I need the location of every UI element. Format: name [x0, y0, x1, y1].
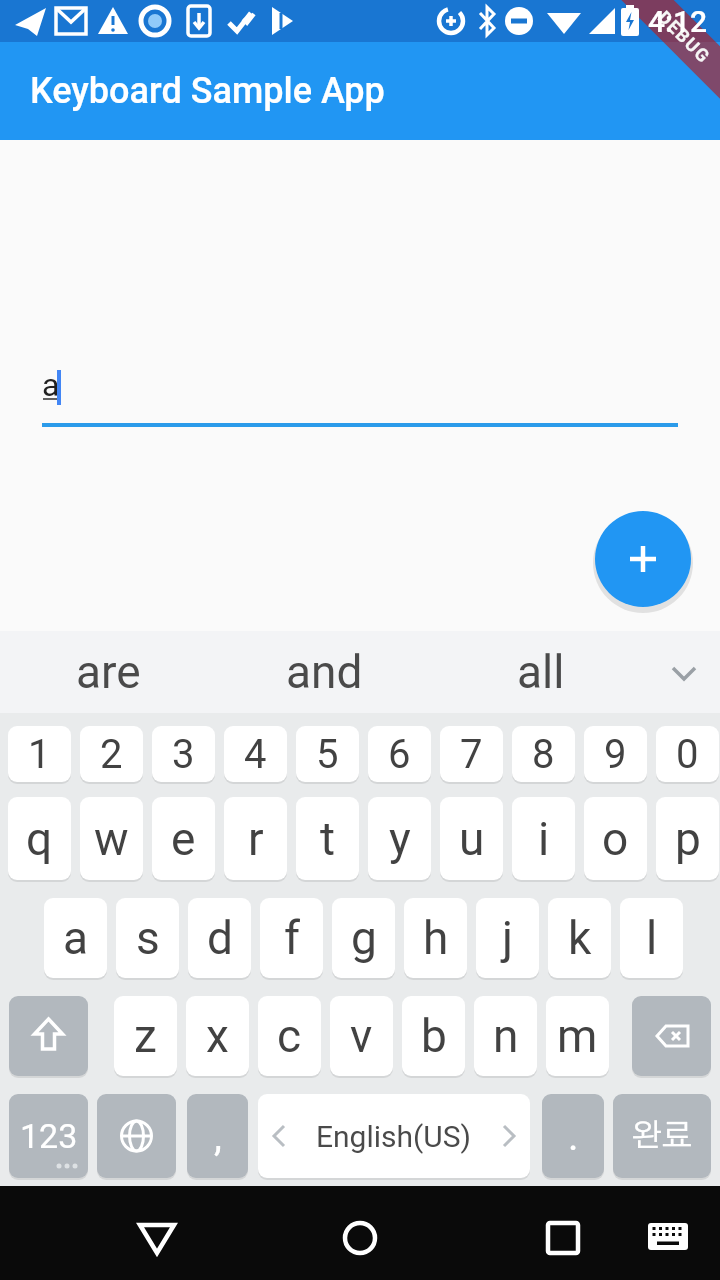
button[interactable]: , — [187, 1094, 248, 1178]
button[interactable]: z — [114, 996, 177, 1076]
button[interactable]: t — [296, 797, 359, 880]
staticText: y — [389, 812, 411, 866]
staticText: 완료 — [631, 1120, 693, 1152]
button[interactable]: 7 — [440, 726, 503, 782]
staticText: j — [502, 911, 514, 965]
button[interactable]: s — [116, 898, 179, 978]
staticText: g — [351, 911, 377, 965]
button[interactable]: 6 — [368, 726, 431, 782]
staticText: x — [206, 1009, 229, 1063]
staticText: 9 — [604, 731, 627, 778]
button[interactable]: 4 — [224, 726, 287, 782]
staticText: o — [602, 812, 629, 866]
staticText: l — [646, 911, 658, 965]
staticText: q — [26, 812, 53, 866]
staticText: 6 — [388, 731, 411, 778]
button[interactable] — [97, 1094, 176, 1178]
button[interactable]: o — [584, 797, 647, 880]
button[interactable]: 3 — [152, 726, 215, 782]
staticText: n — [493, 1009, 519, 1063]
staticText: 2 — [100, 731, 123, 778]
staticText: s — [136, 911, 160, 965]
button[interactable]: h — [404, 898, 467, 978]
button[interactable]: i — [512, 797, 575, 880]
button[interactable] — [660, 648, 708, 696]
button[interactable] — [127, 1207, 187, 1267]
button[interactable] — [644, 1212, 692, 1260]
staticText: Keyboard Sample App — [30, 70, 385, 112]
staticText: and — [286, 645, 363, 699]
button[interactable]: g — [332, 898, 395, 978]
staticText: c — [277, 1009, 302, 1063]
staticText: a — [42, 366, 60, 404]
button[interactable]: w — [80, 797, 143, 880]
button[interactable] — [330, 1207, 390, 1267]
staticText: z — [134, 1009, 157, 1063]
staticText: i — [538, 812, 550, 866]
button[interactable]: m — [546, 996, 609, 1076]
button[interactable]: c — [258, 996, 321, 1076]
button[interactable]: 1 — [8, 726, 71, 782]
staticText: f — [284, 911, 300, 965]
button[interactable] — [9, 996, 88, 1076]
button[interactable]: n — [474, 996, 537, 1076]
button[interactable]: r — [224, 797, 287, 880]
staticText: h — [423, 911, 449, 965]
button[interactable]: p — [656, 797, 719, 880]
staticText: b — [421, 1009, 447, 1063]
button[interactable]: x — [186, 996, 249, 1076]
staticText: 4 — [244, 731, 267, 778]
button[interactable]: English(US) — [258, 1094, 530, 1178]
button[interactable] — [632, 996, 711, 1076]
staticText: 0 — [676, 731, 699, 778]
button[interactable]: v — [330, 996, 393, 1076]
staticText: e — [171, 812, 196, 866]
button[interactable]: f — [260, 898, 323, 978]
button[interactable]: 123 — [9, 1094, 88, 1178]
button[interactable] — [533, 1207, 593, 1267]
staticText: 8 — [532, 731, 555, 778]
button[interactable]: u — [440, 797, 503, 880]
button[interactable]: 완료 — [613, 1094, 711, 1178]
button[interactable]: e — [152, 797, 215, 880]
button[interactable]: 9 — [584, 726, 647, 782]
staticText: 4:12 — [648, 4, 708, 39]
staticText: DEBUG — [654, 6, 715, 67]
button[interactable]: l — [620, 898, 683, 978]
button[interactable]: 2 — [80, 726, 143, 782]
staticText: a — [63, 911, 89, 965]
staticText: m — [557, 1009, 598, 1063]
staticText: . — [568, 1113, 579, 1160]
staticText: 1 — [28, 731, 51, 778]
staticText: v — [350, 1009, 373, 1063]
button[interactable]: all — [471, 631, 611, 713]
button[interactable]: a — [44, 898, 107, 978]
staticText: English(US) — [316, 1119, 472, 1154]
staticText: k — [568, 911, 592, 965]
staticText: t — [320, 812, 336, 866]
staticText: are — [76, 645, 141, 699]
button[interactable]: 8 — [512, 726, 575, 782]
button[interactable]: d — [188, 898, 251, 978]
staticText: all — [517, 645, 565, 699]
staticText: p — [675, 812, 701, 866]
button[interactable]: are — [38, 631, 178, 713]
button[interactable]: k — [548, 898, 611, 978]
staticText: d — [207, 911, 233, 965]
staticText: 123 — [20, 1116, 78, 1156]
button[interactable] — [595, 511, 691, 607]
staticText: w — [94, 812, 129, 866]
button[interactable]: and — [254, 631, 394, 713]
staticText: , — [214, 1113, 222, 1160]
button[interactable]: . — [542, 1094, 604, 1178]
staticText: r — [248, 812, 264, 866]
button[interactable]: y — [368, 797, 431, 880]
staticText: 5 — [316, 731, 339, 778]
button[interactable]: q — [8, 797, 71, 880]
button[interactable]: j — [476, 898, 539, 978]
button[interactable]: b — [402, 996, 465, 1076]
staticText: 3 — [172, 731, 195, 778]
button[interactable]: 5 — [296, 726, 359, 782]
staticText: u — [459, 812, 485, 866]
button[interactable]: 0 — [656, 726, 719, 782]
